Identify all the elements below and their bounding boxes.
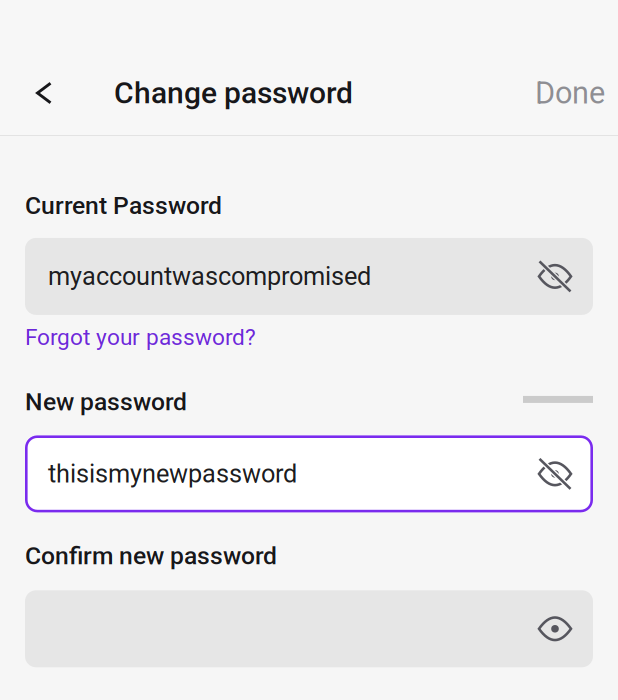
staticText: thisismynewpassword: [48, 459, 297, 489]
staticText: Change password: [114, 75, 353, 111]
button[interactable]: Hide password: [528, 595, 582, 663]
staticText: myaccountwascompromised: [48, 262, 371, 291]
button[interactable]: Back: [16, 62, 72, 124]
button[interactable]: Current Password: [25, 238, 593, 315]
button[interactable]: Show password: [528, 440, 582, 508]
button[interactable]: Confirm new password: [25, 590, 593, 667]
staticText: Confirm new password: [25, 541, 277, 570]
staticText: Current Password: [25, 191, 222, 220]
button[interactable]: New password: [25, 435, 593, 512]
button[interactable]: Show password: [528, 242, 582, 310]
staticText: Forgot your password?: [25, 324, 256, 350]
button[interactable]: Forgot your password?: [25, 315, 256, 352]
staticText: Done: [535, 75, 605, 111]
button[interactable]: Done: [525, 62, 615, 124]
staticText: New password: [25, 387, 187, 416]
